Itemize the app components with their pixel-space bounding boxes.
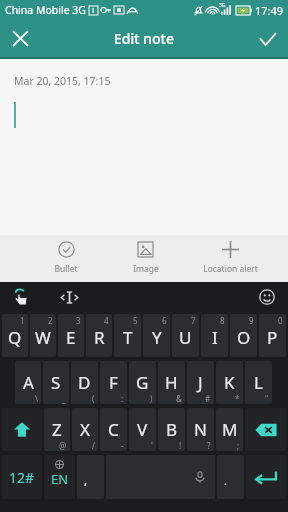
staticText: 12#: [9, 468, 35, 487]
button[interactable]: Move cursor: [58, 286, 80, 308]
staticText: N: [194, 418, 207, 441]
staticText: O: [237, 326, 251, 349]
staticText: Edit note: [114, 29, 174, 48]
staticText: J: [198, 371, 203, 394]
staticText: Image: [133, 263, 159, 275]
staticText: Location alert: [203, 263, 258, 275]
staticText: V: [137, 418, 148, 441]
button[interactable]: Space: [106, 455, 215, 499]
button[interactable]: K: [216, 361, 243, 404]
staticText: D: [78, 371, 91, 394]
button[interactable]: X: [72, 408, 98, 451]
button[interactable]: B: [158, 408, 185, 451]
button[interactable]: Image: [106, 235, 185, 282]
button[interactable]: N: [187, 408, 214, 451]
button[interactable]: Discard: [0, 20, 40, 57]
button[interactable]: J: [187, 361, 214, 404]
button[interactable]: D: [71, 361, 98, 404]
button[interactable]: W: [30, 314, 56, 357]
button[interactable]: Handwriting: [10, 286, 32, 308]
staticText: \: [35, 393, 38, 404]
button[interactable]: I: [201, 314, 228, 357]
staticText: *: [235, 393, 240, 404]
button[interactable]: T: [114, 314, 141, 357]
staticText: @: [59, 440, 67, 451]
staticText: 7: [191, 315, 196, 326]
button[interactable]: V: [129, 408, 156, 451]
staticText: Q: [8, 326, 22, 349]
staticText: 5: [133, 315, 138, 326]
staticText: W: [35, 326, 51, 349]
button[interactable]: Mar 20, 2015, 17:15: [0, 59, 288, 235]
button[interactable]: Enter: [246, 455, 286, 499]
staticText: L: [254, 371, 263, 394]
button[interactable]: Bullet: [26, 235, 106, 282]
button[interactable]: P: [259, 314, 286, 357]
staticText: &: [176, 393, 182, 404]
staticText: ;: [237, 440, 240, 451]
button[interactable]: Shift: [2, 408, 42, 451]
staticText: 9: [249, 315, 254, 326]
staticText: 0: [278, 315, 283, 326]
staticText: (: [92, 393, 95, 404]
staticText: T: [123, 326, 133, 349]
button[interactable]: 12#: [2, 455, 42, 499]
staticText: K: [224, 371, 235, 394]
button[interactable]: Save: [248, 20, 288, 57]
staticText: 6: [162, 315, 167, 326]
staticText: U: [179, 326, 192, 349]
staticText: 4: [104, 315, 109, 326]
button[interactable]: S: [43, 361, 69, 404]
staticText: _: [62, 393, 66, 404]
button[interactable]: Backspace: [245, 408, 286, 451]
staticText: ?: [207, 440, 211, 451]
staticText: Mar 20, 2015, 17:15: [14, 74, 111, 88]
staticText: China Mobile 3G: [5, 3, 86, 17]
staticText: E: [66, 326, 76, 349]
staticText: /: [92, 440, 95, 451]
staticText: 17:49: [255, 3, 284, 18]
staticText: EN: [51, 470, 69, 488]
button[interactable]: R: [86, 314, 112, 357]
staticText: 8: [220, 315, 225, 326]
button[interactable]: F: [100, 361, 127, 404]
button[interactable]: Z: [44, 408, 70, 451]
button[interactable]: G: [129, 361, 156, 404]
staticText: #: [205, 393, 211, 404]
button[interactable]: Emoji: [256, 286, 278, 308]
staticText: :: [121, 393, 124, 404]
staticText: G: [136, 371, 149, 394]
staticText: 1: [20, 315, 25, 326]
staticText: P: [267, 326, 278, 349]
staticText: ": [265, 393, 269, 404]
staticText: F: [109, 371, 118, 394]
button[interactable]: Q: [2, 314, 28, 357]
staticText: H: [165, 371, 178, 394]
button[interactable]: E: [58, 314, 84, 357]
button[interactable]: .: [217, 455, 244, 499]
button[interactable]: Y: [143, 314, 170, 357]
button[interactable]: M: [216, 408, 243, 451]
button[interactable]: U: [172, 314, 199, 357]
button[interactable]: O: [230, 314, 257, 357]
button[interactable]: Location alert: [185, 235, 276, 282]
staticText: Bullet: [54, 263, 78, 275]
staticText: X: [80, 418, 90, 441]
staticText: 2: [48, 315, 53, 326]
button[interactable]: C: [100, 408, 127, 451]
staticText: B: [166, 418, 178, 441]
staticText: Z: [52, 418, 62, 441]
staticText: 3: [76, 315, 81, 326]
staticText: ,: [84, 473, 87, 488]
staticText: I: [212, 326, 218, 349]
staticText: A: [23, 371, 34, 394]
button[interactable]: L: [245, 361, 272, 404]
staticText: .: [224, 473, 227, 488]
button[interactable]: A: [15, 361, 41, 404]
staticText: !: [179, 440, 182, 451]
staticText: C: [108, 418, 119, 441]
button[interactable]: ,: [77, 455, 104, 499]
staticText: ': [151, 440, 153, 451]
button[interactable]: Change language: [44, 455, 75, 499]
button[interactable]: H: [158, 361, 185, 404]
